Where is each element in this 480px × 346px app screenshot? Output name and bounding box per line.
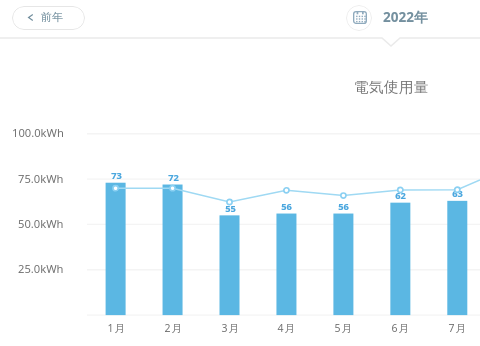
button[interactable]: 前年 [12, 6, 85, 30]
staticText: 56 [338, 200, 349, 213]
staticText: 5月 [334, 321, 353, 335]
staticText: 7月 [448, 321, 467, 335]
staticText: 72 [168, 171, 179, 184]
staticText: 1月 [107, 321, 126, 335]
staticText: 100.0kWh [12, 125, 64, 140]
staticText: 50.0kWh [18, 216, 64, 231]
staticText: 6月 [391, 321, 410, 335]
button[interactable]: 2022年 [383, 8, 428, 26]
staticText: 3月 [221, 321, 240, 335]
staticText: 前年 [41, 10, 64, 24]
staticText: 62 [395, 189, 406, 202]
staticText: 55 [225, 202, 236, 215]
staticText: 電気使用量 [354, 78, 429, 96]
staticText: 2022年 [383, 8, 428, 26]
staticText: 25.0kWh [18, 261, 64, 276]
staticText: 73 [111, 169, 122, 182]
staticText: 4月 [277, 321, 296, 335]
staticText: 56 [281, 200, 292, 213]
staticText: 2月 [164, 321, 183, 335]
staticText: 75.0kWh [18, 171, 64, 186]
staticText: 63 [452, 187, 463, 200]
button[interactable]: 年を選択 [346, 5, 372, 31]
